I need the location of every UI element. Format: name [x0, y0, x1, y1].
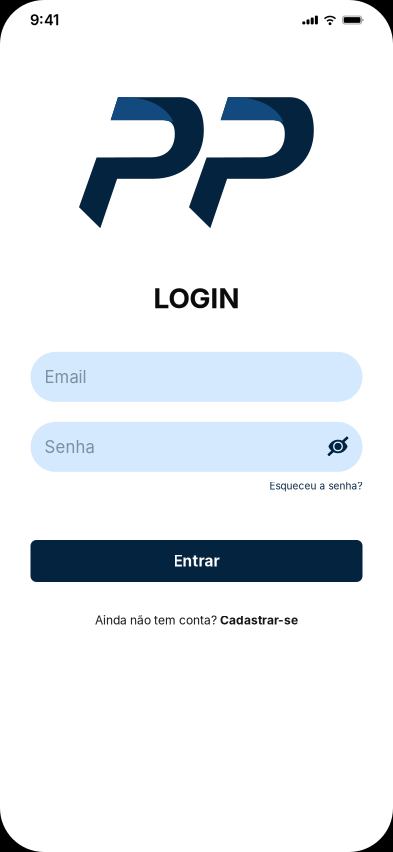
button[interactable]: Mostrar senha [327, 437, 348, 457]
staticText: Esqueceu a senha? [269, 480, 362, 492]
staticText: LOGIN [153, 281, 239, 315]
staticText: Cadastrar-se [220, 613, 298, 627]
staticText: Entrar [173, 552, 219, 570]
button[interactable]: Esqueceu a senha? [269, 480, 362, 492]
staticText: 9:41 [30, 11, 59, 29]
staticText: Senha [44, 437, 94, 457]
button[interactable]: Cadastrar-se [220, 613, 298, 627]
button[interactable]: Entrar [30, 540, 362, 582]
staticText: Ainda não tem conta? [95, 613, 220, 627]
staticText: Email [44, 367, 86, 387]
